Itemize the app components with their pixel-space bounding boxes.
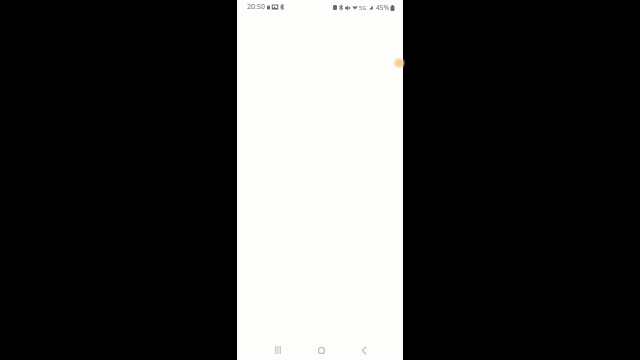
button[interactable]: Add xyxy=(392,56,406,70)
staticText: 5G xyxy=(359,4,367,11)
button[interactable]: Home xyxy=(311,340,331,360)
staticText: 20:50 xyxy=(247,2,265,12)
button[interactable]: Recents xyxy=(268,340,288,360)
button[interactable]: Back xyxy=(354,340,374,360)
staticText: 45% xyxy=(376,3,389,12)
